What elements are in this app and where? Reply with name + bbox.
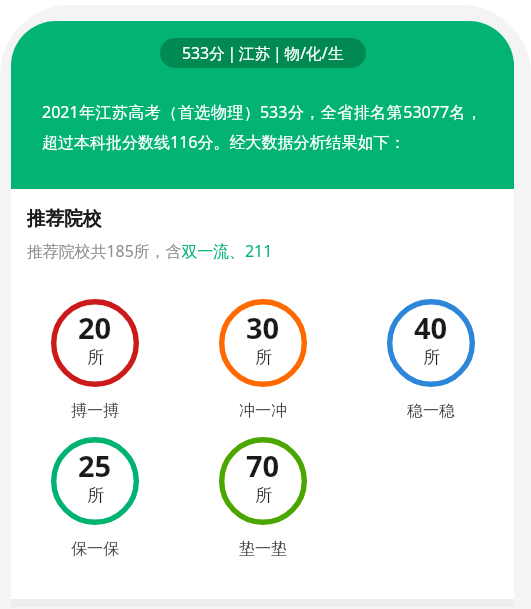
staticText: 推荐院校 [27, 207, 102, 230]
staticText: 稳一稳 [407, 401, 455, 421]
button[interactable]: 40 [347, 299, 514, 421]
button[interactable]: 70 [179, 437, 347, 559]
button[interactable]: 20 [11, 299, 179, 421]
button[interactable]: 533分 | 江苏 | 物/化/生 [160, 38, 366, 68]
staticText: 70 [246, 446, 280, 485]
button[interactable]: 25 [11, 437, 179, 559]
staticText: 所 [423, 347, 440, 368]
staticText: 推荐院校共185所，含双一流、211 [27, 240, 273, 262]
staticText: 所 [87, 347, 104, 368]
staticText: 30 [246, 308, 280, 347]
staticText: 533分 | 江苏 | 物/化/生 [182, 42, 344, 64]
button[interactable]: 30 [179, 299, 347, 421]
staticText: 所 [255, 485, 272, 506]
staticText: 所 [87, 485, 104, 506]
staticText: 推荐院校 [27, 207, 102, 230]
staticText: 保一保 [71, 539, 119, 559]
staticText: 冲一冲 [239, 401, 287, 421]
staticText: 搏一搏 [71, 401, 119, 421]
staticText: 20 [78, 308, 112, 347]
staticText: 所 [255, 347, 272, 368]
staticText: 25 [78, 446, 112, 485]
staticText: 2021年江苏高考（首选物理）533分，全省排名第53077名，超过本科批分数线… [42, 101, 482, 153]
staticText: 40 [414, 308, 448, 347]
staticText: 垫一垫 [239, 539, 287, 559]
